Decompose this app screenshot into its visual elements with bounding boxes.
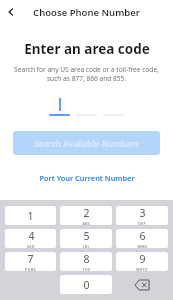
button[interactable]: 5 — [60, 229, 112, 248]
button[interactable]: 4 — [5, 229, 56, 248]
staticText: 7 — [27, 252, 34, 266]
staticText: TUV — [82, 267, 91, 271]
button[interactable]: 1 — [5, 206, 56, 225]
button[interactable]: Back — [0, 1, 22, 23]
staticText: ABC — [82, 221, 91, 225]
button[interactable]: 6 — [116, 229, 168, 248]
staticText: DEF — [138, 221, 146, 225]
button[interactable]: Delete — [116, 275, 168, 294]
button[interactable]: 8 — [60, 252, 112, 271]
staticText: 9 — [139, 252, 146, 266]
staticText: JKL — [83, 244, 90, 248]
button[interactable]: 9 — [116, 252, 168, 271]
button[interactable]: Port Your Current Number — [33, 170, 141, 186]
staticText: 0 — [83, 278, 90, 292]
staticText: Enter an area code — [24, 40, 150, 58]
staticText: GHI — [27, 244, 35, 248]
button[interactable]: 0 — [60, 275, 112, 294]
button[interactable]: 2 — [60, 206, 112, 225]
staticText: Search Available Numbers — [34, 138, 139, 149]
staticText: 3 — [139, 206, 146, 220]
staticText: 1 — [27, 209, 34, 223]
staticText: 4 — [28, 229, 35, 243]
button[interactable]: Search Available Numbers — [13, 131, 160, 155]
button[interactable]: 3 — [116, 206, 168, 225]
button[interactable]: 7 — [5, 252, 56, 271]
staticText: Choose Phone Number — [33, 6, 140, 19]
staticText: 2 — [83, 206, 90, 220]
staticText: MNO — [137, 244, 148, 248]
staticText: PQRS — [25, 267, 36, 271]
staticText: 6 — [139, 229, 146, 243]
staticText: Search for any US area code or a toll-fr… — [14, 65, 159, 83]
staticText: WXYZ — [136, 267, 148, 271]
staticText: 5 — [83, 229, 90, 243]
staticText: Port Your Current Number — [39, 173, 135, 183]
staticText: 8 — [83, 252, 90, 266]
